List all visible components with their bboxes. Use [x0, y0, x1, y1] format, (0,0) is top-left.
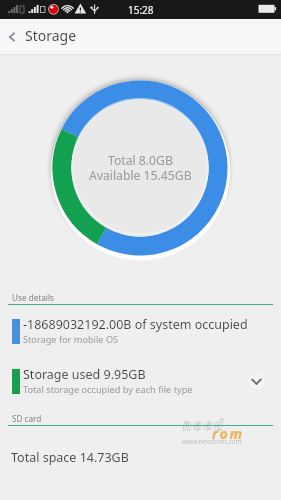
staticText: Total storage occupied by each file type — [23, 383, 193, 396]
button[interactable]: -18689032192.00B of system occupied — [0, 310, 281, 352]
other: Back — [0, 19, 25, 54]
staticText: -18689032192.00B of system occupied — [23, 316, 248, 333]
button[interactable]: Expand — [247, 372, 266, 391]
staticText: Available 15.45GB — [89, 167, 192, 184]
staticText: Storage used 9.95GB — [23, 366, 146, 383]
staticText: need — [183, 415, 225, 434]
staticText: need — [183, 415, 225, 434]
staticText: Use details — [12, 292, 55, 303]
staticText: SD card — [12, 413, 42, 424]
staticText: Total 8.0GB — [108, 152, 173, 169]
staticText: Storage — [25, 26, 77, 45]
staticText: rom — [212, 424, 244, 443]
button[interactable]: Storage used 9.95GB — [0, 360, 281, 402]
staticText: Storage for mobile OS — [23, 333, 119, 346]
button[interactable]: Total space 14.73GB — [0, 440, 281, 472]
staticText: Total space 14.73GB — [11, 449, 129, 466]
button[interactable]: Back — [0, 19, 281, 54]
staticText: www.needrom.com — [182, 437, 242, 446]
staticText: 15:28 — [128, 3, 154, 17]
